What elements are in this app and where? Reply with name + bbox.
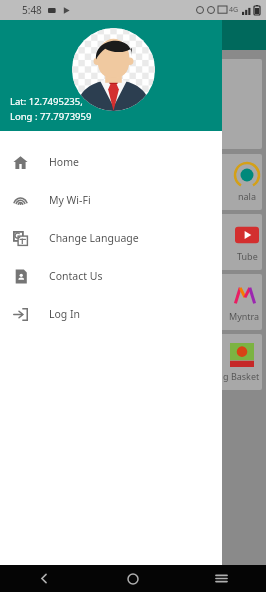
staticText: 4G [229, 5, 239, 15]
staticText: Contact Us [49, 269, 103, 283]
staticText: Long : 77.7973959 [10, 110, 92, 123]
staticText: Change Language [49, 231, 139, 245]
button[interactable]: Home [0, 143, 222, 181]
staticText: Myntra [229, 310, 260, 322]
staticText: age [10, 126, 30, 141]
staticText: ANI [10, 96, 30, 111]
button[interactable]: Log In [0, 295, 222, 333]
button[interactable]: Change Language [0, 219, 222, 257]
staticText: g Basket [223, 370, 260, 382]
button[interactable]: g Basket [4, 334, 262, 390]
button[interactable]: Back [0, 565, 88, 592]
button[interactable]: nala [4, 154, 262, 210]
staticText: Log In [49, 307, 81, 321]
staticText: Lat: 12.7495235, [10, 95, 83, 108]
staticText: Home [49, 155, 79, 169]
staticText: rge [10, 111, 28, 126]
staticText: nala [238, 190, 256, 202]
button[interactable]: Contact Us [0, 257, 222, 295]
button[interactable]: Recent apps [177, 565, 266, 592]
staticText: 5:48 [22, 3, 42, 17]
button[interactable]: Myntra [4, 274, 262, 330]
staticText: Tube [237, 250, 258, 262]
button[interactable]: Tube [4, 214, 262, 270]
button[interactable]: My Wi-Fi [0, 181, 222, 219]
button[interactable]: Home [88, 565, 177, 592]
staticText: My Wi-Fi [49, 193, 91, 207]
